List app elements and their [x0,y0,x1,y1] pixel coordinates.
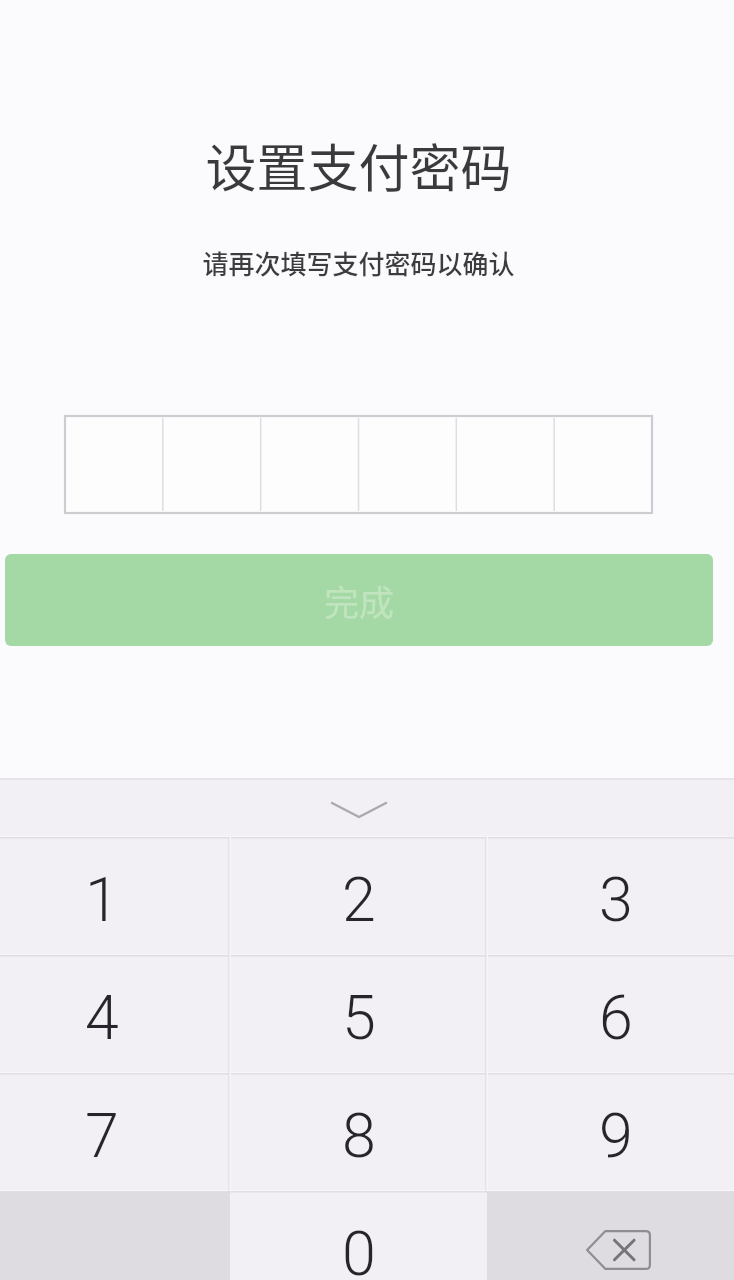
staticText: 1 [85,864,119,935]
button[interactable]: 2 [230,837,487,955]
button[interactable]: 1 [0,837,230,955]
staticText: 8 [342,1100,376,1171]
staticText: 9 [599,1100,633,1171]
staticText: 3 [599,864,633,935]
staticText: 5 [342,982,376,1053]
staticText: 6 [599,982,633,1053]
button[interactable]: 5 [230,955,487,1073]
staticText: 0 [342,1218,376,1280]
button[interactable]: Password digit 3 [260,416,358,513]
button[interactable]: 4 [0,955,230,1073]
button[interactable]: Password digit 4 [358,416,456,513]
button[interactable]: 3 [487,837,734,955]
staticText: 2 [342,864,376,935]
staticText: 完成 [324,575,395,626]
button[interactable]: Password digit 2 [162,416,260,513]
button[interactable]: Password digit 1 [65,416,162,513]
button[interactable]: 9 [487,1073,734,1191]
button[interactable]: Password digit 5 [456,416,554,513]
button[interactable]: 0 [230,1191,487,1280]
button[interactable]: 6 [487,955,734,1073]
button[interactable]: 完成 [5,554,713,646]
button[interactable]: 7 [0,1073,230,1191]
staticText: 设置支付密码 [205,128,512,202]
button[interactable]: Backspace [487,1191,734,1280]
button[interactable]: Hide keyboard [0,778,734,837]
button[interactable]: 8 [230,1073,487,1191]
staticText: 4 [85,982,119,1053]
staticText: 7 [85,1100,119,1171]
staticText: 请再次填写支付密码以确认 [202,244,515,282]
button[interactable]: Password digit 6 [554,416,652,513]
